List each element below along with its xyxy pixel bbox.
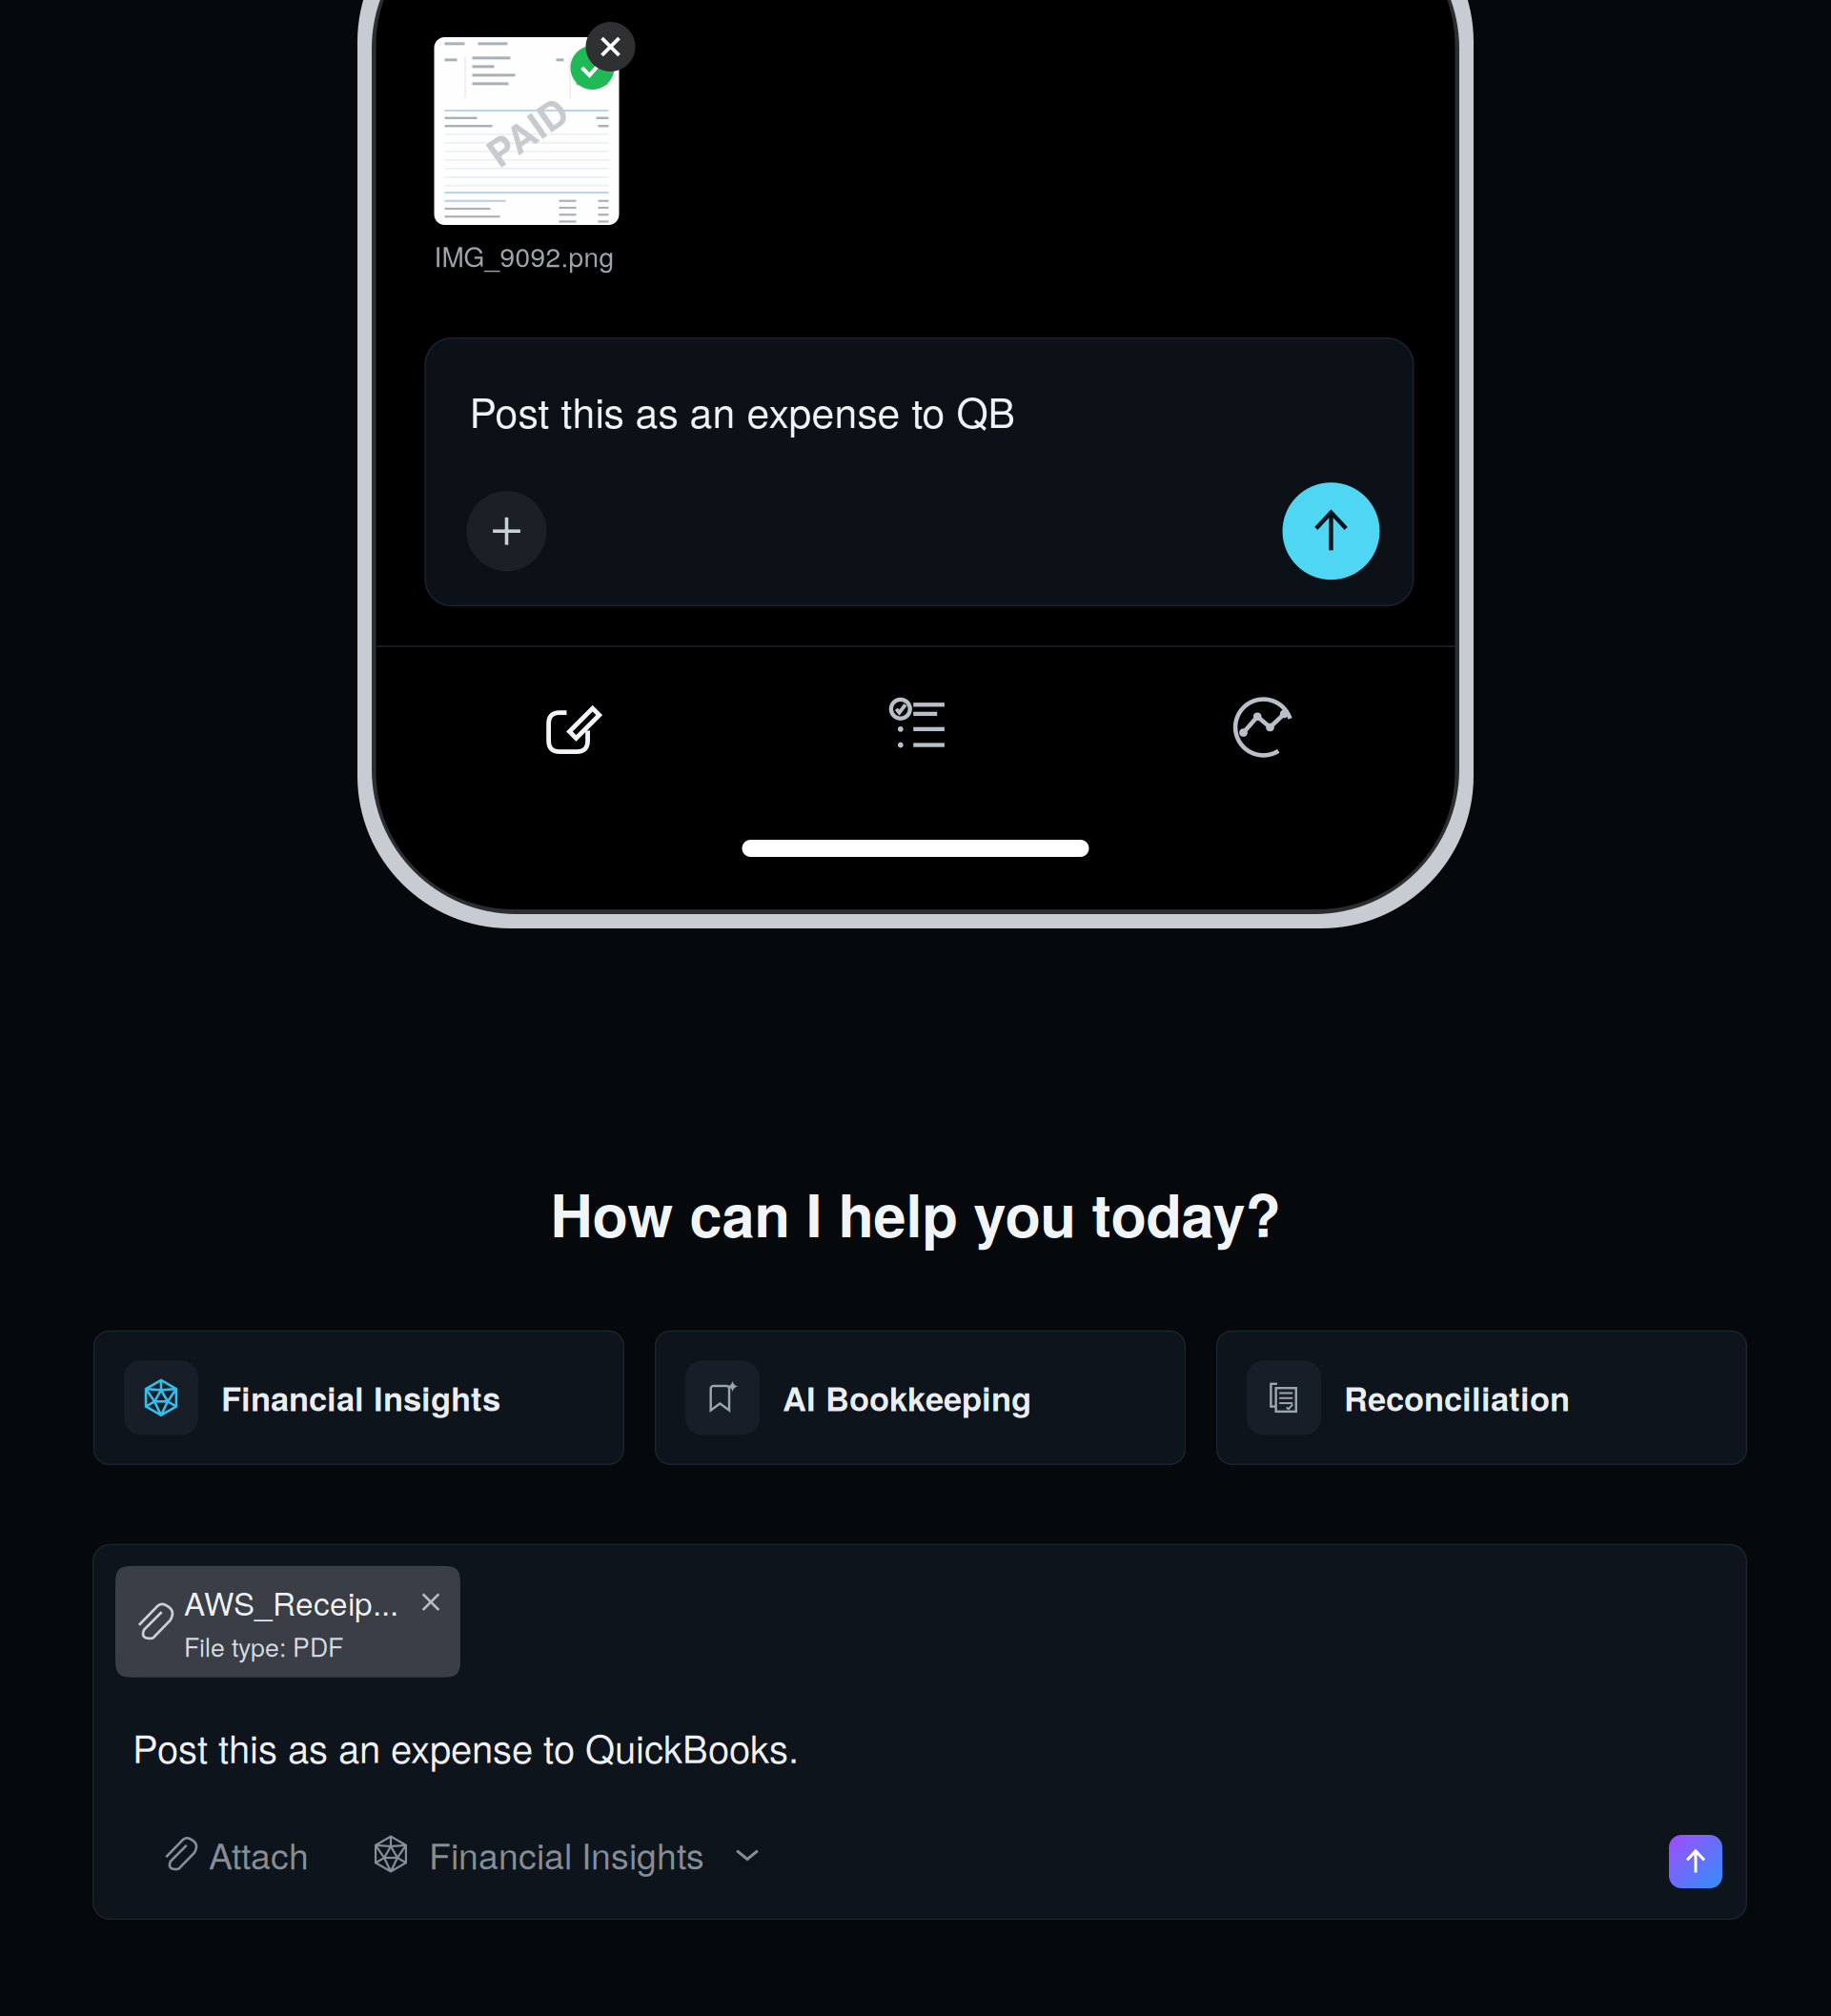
button[interactable]: Send bbox=[1282, 483, 1380, 580]
staticText: AI Bookkeeping bbox=[783, 1374, 1031, 1421]
staticText: PAID bbox=[482, 104, 571, 158]
staticText: Financial Insights bbox=[221, 1374, 500, 1421]
button[interactable]: Send bbox=[1669, 1827, 1722, 1881]
staticText: File type: PDF bbox=[184, 1628, 343, 1664]
button[interactable]: Attach bbox=[159, 1829, 309, 1880]
button[interactable]: Tasks bbox=[865, 683, 972, 771]
button[interactable]: Remove AWS_Receipt bbox=[417, 1589, 444, 1615]
button[interactable]: Add attachment bbox=[467, 491, 547, 571]
staticText: IMG_9092.png bbox=[434, 236, 614, 275]
button[interactable]: Remove attachment bbox=[586, 22, 635, 71]
button[interactable]: Reconciliation bbox=[1216, 1330, 1747, 1465]
staticText: Reconciliation bbox=[1344, 1374, 1570, 1421]
staticText: Post this as an expense to QuickBooks. bbox=[132, 1719, 799, 1774]
button[interactable]: Financial Insights bbox=[372, 1829, 763, 1880]
staticText: Attach bbox=[209, 1829, 309, 1880]
staticText: AWS_Receip... bbox=[184, 1579, 398, 1625]
button[interactable]: Financial Insights bbox=[93, 1330, 624, 1465]
button[interactable]: Insights bbox=[1210, 683, 1317, 771]
staticText: How can I help you today? bbox=[550, 1171, 1281, 1255]
staticText: Financial Insights bbox=[429, 1829, 704, 1880]
button[interactable]: New chat bbox=[521, 683, 628, 771]
button[interactable]: AI Bookkeeping bbox=[655, 1330, 1186, 1465]
staticText: Post this as an expense to QB bbox=[469, 381, 1015, 440]
